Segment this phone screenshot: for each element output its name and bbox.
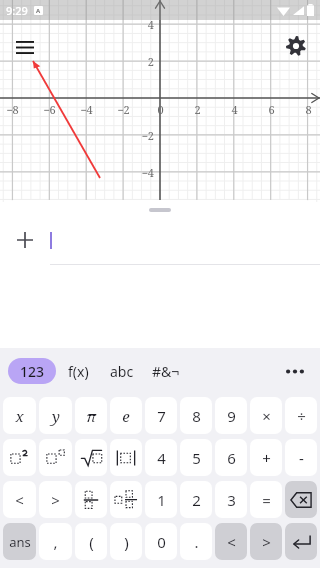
button[interactable]: 123	[8, 358, 56, 384]
button[interactable]: +	[250, 439, 282, 476]
staticText: ×	[262, 406, 271, 426]
staticText: f(x)	[68, 362, 89, 381]
staticText: −8	[6, 102, 19, 117]
button[interactable]: MIXED	[110, 481, 142, 518]
staticText: −2	[141, 128, 154, 143]
staticText: 1	[157, 490, 166, 510]
staticText: -	[299, 448, 304, 468]
button[interactable]: f(x)	[56, 356, 100, 386]
staticText: 2	[192, 490, 201, 510]
button[interactable]: <	[3, 481, 36, 518]
button[interactable]: BACKSPACE	[285, 481, 317, 518]
button[interactable]: 0	[145, 523, 177, 560]
staticText: #&¬	[152, 362, 180, 381]
button[interactable]: <	[215, 523, 247, 560]
staticText: y	[52, 406, 60, 426]
button[interactable]: 8	[180, 397, 212, 434]
button[interactable]: abc	[100, 356, 144, 386]
staticText: −6	[43, 102, 56, 117]
button[interactable]: 5	[180, 439, 212, 476]
button[interactable]: 3	[215, 481, 247, 518]
staticText: )	[124, 532, 129, 552]
button[interactable]: x	[3, 397, 36, 434]
staticText: −4	[141, 165, 154, 180]
button[interactable]: Add expression	[0, 216, 320, 264]
staticText: abc	[110, 362, 134, 381]
button[interactable]: ,	[39, 523, 72, 560]
button[interactable]: 6	[215, 439, 247, 476]
staticText: e	[122, 406, 130, 426]
staticText: <	[15, 490, 24, 510]
staticText: π	[86, 406, 96, 426]
staticText: −4	[80, 102, 93, 117]
button[interactable]: More options	[280, 356, 310, 386]
staticText: 8	[305, 102, 312, 117]
staticText: ÷	[297, 406, 306, 426]
staticText: 5	[192, 448, 201, 468]
staticText: 4	[147, 17, 154, 32]
staticText: (	[89, 532, 94, 552]
button[interactable]: SQUARE_POW2	[3, 439, 36, 476]
button[interactable]: e	[110, 397, 142, 434]
button[interactable]: ans	[3, 523, 36, 560]
button[interactable]: 1	[145, 481, 177, 518]
button[interactable]: ÷	[285, 397, 317, 434]
staticText: >	[51, 490, 60, 510]
staticText: 3	[227, 490, 236, 510]
staticText: x	[15, 406, 24, 426]
staticText: 0	[157, 532, 166, 552]
staticText: −2	[117, 102, 130, 117]
staticText: 6	[268, 102, 275, 117]
staticText: 2	[194, 102, 201, 117]
button[interactable]: ×	[250, 397, 282, 434]
staticText: 4	[231, 102, 238, 117]
staticText: 9	[227, 406, 236, 426]
staticText: =	[262, 490, 271, 510]
button[interactable]: ABS	[110, 439, 142, 476]
staticText: .	[194, 532, 199, 552]
button[interactable]: 4	[145, 439, 177, 476]
button[interactable]: >	[39, 481, 72, 518]
button[interactable]: SQUARE_POWN	[39, 439, 72, 476]
button[interactable]: Add expression	[0, 216, 50, 264]
staticText: <	[227, 532, 236, 552]
staticText: 9:29	[6, 3, 28, 18]
staticText: +	[262, 448, 271, 468]
staticText: 7	[157, 406, 166, 426]
button[interactable]: 7	[145, 397, 177, 434]
staticText: >	[262, 532, 271, 552]
staticText: 6	[227, 448, 236, 468]
staticText: ,	[53, 532, 58, 552]
button[interactable]: ENTER	[285, 523, 317, 560]
staticText: A	[36, 7, 41, 15]
staticText: 2	[147, 54, 154, 69]
button[interactable]: )	[110, 523, 142, 560]
button[interactable]: 9	[215, 397, 247, 434]
button[interactable]: Settings	[281, 31, 311, 61]
button[interactable]: Menu	[10, 32, 40, 62]
button[interactable]: #&¬	[144, 356, 188, 386]
staticText: 0	[157, 102, 164, 117]
staticText: 8	[192, 406, 201, 426]
button[interactable]: y	[39, 397, 72, 434]
button[interactable]: >	[250, 523, 282, 560]
button[interactable]: (	[75, 523, 107, 560]
staticText: ans	[9, 533, 31, 551]
staticText: 4	[157, 448, 166, 468]
button[interactable]: π	[75, 397, 107, 434]
button[interactable]: 2	[180, 481, 212, 518]
button[interactable]: SQRT	[75, 439, 107, 476]
button[interactable]: -	[285, 439, 317, 476]
button[interactable]: FRACTION	[75, 481, 107, 518]
button[interactable]: =	[250, 481, 282, 518]
staticText: 123	[20, 362, 45, 381]
button[interactable]: .	[180, 523, 212, 560]
